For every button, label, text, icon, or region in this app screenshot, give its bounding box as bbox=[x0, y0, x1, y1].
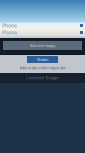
staticText: Not seen happy bbox=[29, 43, 55, 48]
button[interactable]: Informatie en/of registratie bbox=[19, 65, 65, 70]
button[interactable]: Not seen happy bbox=[3, 41, 82, 50]
button[interactable]: Phone bbox=[0, 22, 85, 29]
staticText: Phone bbox=[2, 29, 17, 36]
staticText: Phone bbox=[2, 22, 17, 29]
button[interactable]: Sluiten bbox=[27, 56, 58, 63]
staticText: Informatie en/of registratie bbox=[19, 65, 65, 70]
staticText: Sluiten bbox=[37, 57, 48, 62]
button[interactable]: Phone bbox=[0, 29, 85, 36]
staticText: Connected Blogger bbox=[25, 75, 59, 80]
